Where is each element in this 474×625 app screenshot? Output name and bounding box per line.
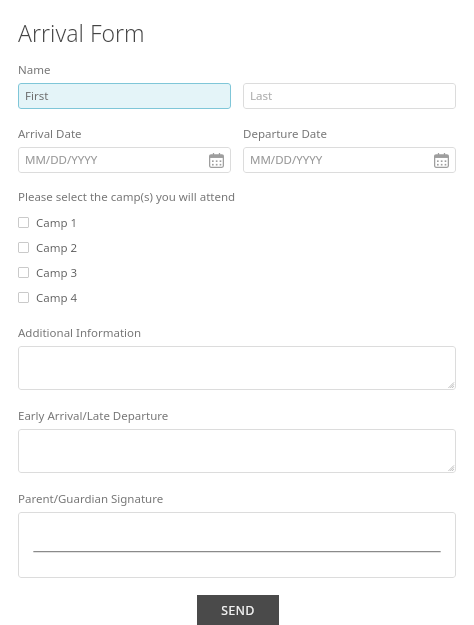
staticText: First xyxy=(25,88,49,104)
button[interactable] xyxy=(18,346,456,390)
staticText: Last xyxy=(250,88,273,104)
button[interactable]: First xyxy=(18,83,231,109)
staticText: Camp 3 xyxy=(36,265,78,281)
staticText: Camp 4 xyxy=(36,290,78,306)
staticText: Name xyxy=(18,62,51,78)
staticText: MM/DD/YYYY xyxy=(250,152,323,168)
staticText: Please select the camp(s) you will atten… xyxy=(18,189,236,205)
staticText: Camp 2 xyxy=(36,240,78,256)
staticText: SEND xyxy=(221,602,255,618)
button[interactable]: MM/DD/YYYY xyxy=(243,147,456,173)
staticText: Early Arrival/Late Departure xyxy=(18,408,169,424)
other: Open calendar xyxy=(250,147,449,173)
staticText: Camp 1 xyxy=(36,215,78,231)
button[interactable] xyxy=(18,512,456,578)
other: Open calendar xyxy=(25,147,224,173)
button[interactable] xyxy=(18,429,456,473)
staticText: Additional Information xyxy=(18,325,142,341)
button[interactable]: Camp 3 xyxy=(0,260,474,285)
button[interactable]: SEND xyxy=(197,595,279,625)
staticText: Departure Date xyxy=(243,126,327,142)
button[interactable]: Last xyxy=(243,83,456,109)
staticText: MM/DD/YYYY xyxy=(25,152,98,168)
staticText: Arrival Date xyxy=(18,126,82,142)
button[interactable]: Camp 1 xyxy=(0,210,474,235)
staticText: Parent/Guardian Signature xyxy=(18,491,164,507)
button[interactable]: MM/DD/YYYY xyxy=(18,147,231,173)
staticText: Arrival Form xyxy=(18,17,145,48)
button[interactable]: Camp 2 xyxy=(0,235,474,260)
button[interactable]: Camp 4 xyxy=(0,285,474,310)
